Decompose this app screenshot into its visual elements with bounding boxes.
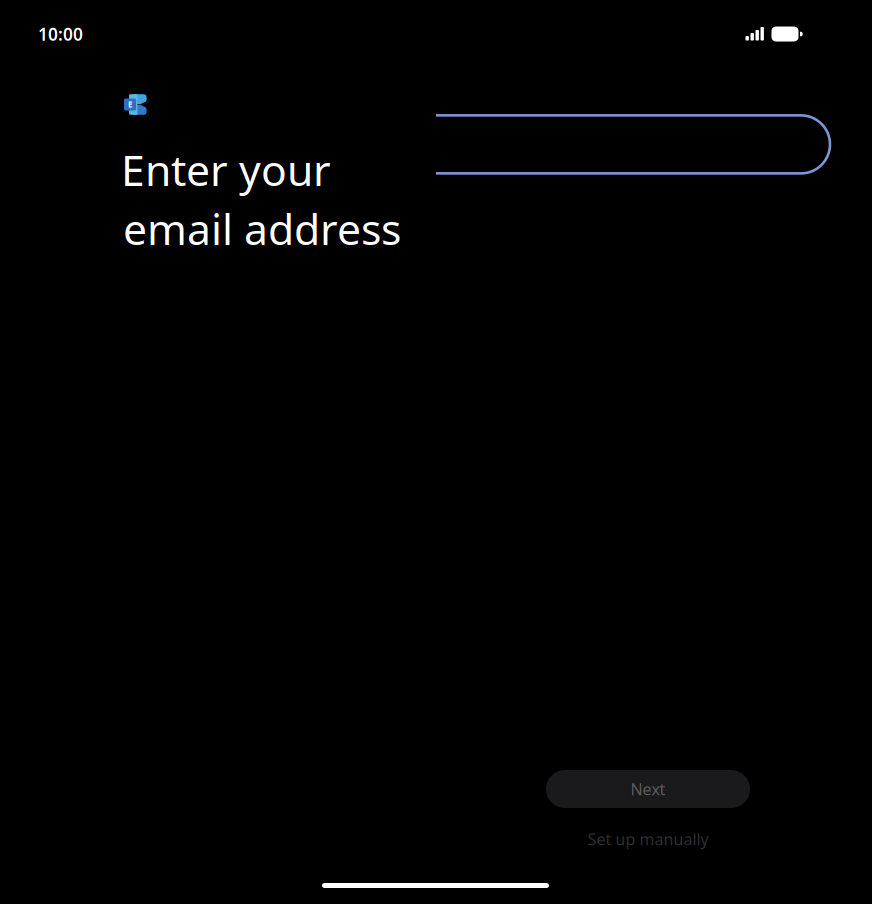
staticText: 10:00 [38, 22, 83, 45]
staticText: email address [123, 200, 401, 257]
button[interactable]: Next [546, 770, 750, 808]
staticText: Next [630, 778, 665, 800]
button[interactable]: Email address [0, 0, 872, 904]
staticText: Enter your [121, 141, 331, 198]
staticText: Set up manually [587, 828, 708, 850]
staticText: E [128, 99, 132, 110]
button[interactable]: Set up manually [546, 822, 750, 856]
